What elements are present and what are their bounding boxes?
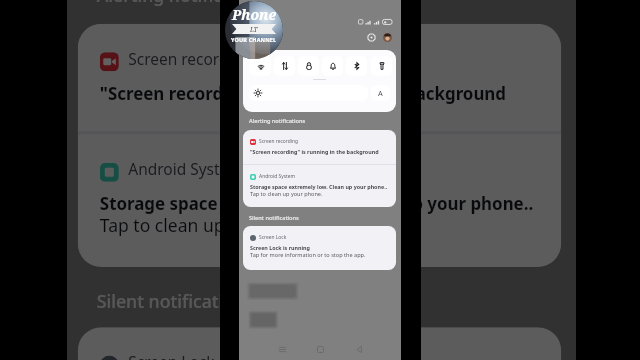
staticText: Tap to clean up your phone.: [250, 190, 323, 198]
button[interactable]: Android System: [78, 134, 561, 267]
staticText: Alerting notifications: [97, 0, 277, 8]
staticText: Android System: [259, 173, 296, 180]
button[interactable]: Channel logo: [225, 1, 283, 59]
staticText: Screen Lock is running: [250, 244, 310, 251]
button[interactable]: lock: [298, 56, 319, 76]
staticText: Tap to clean up your phone.: [100, 213, 331, 239]
button[interactable]: torch: [371, 56, 392, 76]
button[interactable]: Auto brightness: [371, 85, 390, 101]
staticText: "Screen recording" is running in the bac…: [100, 81, 507, 103]
staticText: Silent notifications: [97, 289, 255, 314]
staticText: Screen Lock: [259, 234, 287, 241]
staticText: Screen Lock: [128, 352, 217, 360]
button[interactable]: wifi: [250, 56, 271, 76]
staticText: "Screen recording" is running in the bac…: [250, 148, 379, 155]
staticText: Phone: [232, 5, 277, 24]
staticText: Screen recording: [128, 49, 251, 71]
staticText: Tap for more information or to stop the …: [250, 251, 366, 259]
button[interactable]: Screen Lock: [78, 327, 561, 360]
button[interactable]: Back: [351, 341, 367, 357]
staticText: Android System: [128, 160, 245, 182]
button[interactable]: Screen recording: [78, 24, 561, 131]
staticText: Storage space extremely low. Clean up yo…: [100, 191, 536, 213]
button[interactable]: bell: [322, 56, 343, 76]
button[interactable]: data: [274, 56, 295, 76]
button[interactable]: Screen Lock: [243, 226, 396, 270]
button[interactable]: Home: [312, 341, 328, 357]
staticText: Storage space extremely low. Clean up yo…: [250, 183, 388, 190]
button[interactable]: Account: [383, 33, 392, 42]
button[interactable]: Android System: [243, 165, 396, 207]
staticText: Alerting notifications: [249, 117, 306, 125]
button[interactable]: Recents: [274, 341, 290, 357]
staticText: LT: [250, 25, 258, 34]
staticText: YOUR CHANNEL: [231, 36, 277, 43]
button[interactable]: Screen recording: [243, 130, 396, 164]
button[interactable]: Brightness: [249, 85, 368, 101]
staticText: A: [378, 88, 383, 98]
staticText: Screen recording: [259, 138, 298, 145]
button[interactable]: bt: [346, 56, 367, 76]
button[interactable]: Settings: [367, 33, 376, 42]
staticText: Silent notifications: [249, 214, 299, 222]
